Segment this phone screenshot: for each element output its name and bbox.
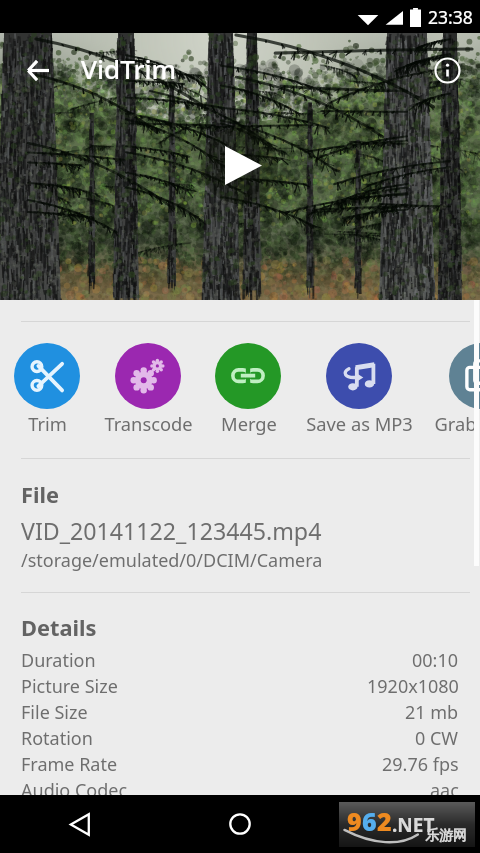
staticText: aac [430,778,459,803]
staticText: VidTrim [81,51,177,86]
staticText: Grab [434,411,477,435]
staticText: 21 mb [405,700,459,725]
staticText: Merge [221,411,277,435]
staticText: 9 [347,804,362,838]
staticText: File Size [21,700,88,725]
staticText: 0 CW [415,726,459,751]
staticText: 乐游网 [425,827,467,845]
staticText: Details [21,613,97,643]
staticText: VID_20141122_123445.mp4 [21,515,322,547]
button[interactable]: Transcode [93,343,203,435]
staticText: File [21,480,59,510]
button[interactable]: Back [13,46,62,95]
staticText: Duration [21,648,96,673]
button[interactable]: Recent apps [320,795,480,853]
staticText: 6 [362,804,377,838]
button[interactable]: Merge [194,343,304,435]
staticText: 00:10 [412,648,459,673]
staticText: Trim [28,411,67,435]
staticText: Transcode [104,411,193,435]
button[interactable]: Save as MP3 [304,343,414,435]
staticText: 23:38 [428,5,473,29]
staticText: 2 [377,804,392,838]
staticText: Picture Size [21,674,118,699]
button[interactable]: Back [0,795,160,853]
staticText: 29.76 fps [382,752,459,777]
button[interactable]: Play [201,127,278,204]
staticText: .NET [392,812,435,838]
staticText: 1920x1080 [367,674,459,699]
staticText: Rotation [21,726,93,751]
button[interactable]: Grab [400,343,480,435]
staticText: Audio Codec [21,778,128,803]
button[interactable]: Home [160,795,320,853]
button[interactable]: Info [423,46,472,95]
button[interactable]: Trim [0,343,102,435]
staticText: Frame Rate [21,752,118,777]
staticText: /storage/emulated/0/DCIM/Camera [21,548,323,573]
staticText: Save as MP3 [306,411,413,435]
